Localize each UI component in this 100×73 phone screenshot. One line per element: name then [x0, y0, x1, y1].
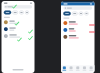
button[interactable]: Search	[4, 5, 32, 8]
button[interactable]: Filter	[84, 12, 88, 15]
button[interactable]: Search	[63, 6, 92, 10]
button[interactable]: Tab	[88, 66, 94, 71]
button[interactable]: Filter	[4, 11, 11, 14]
button[interactable]: Filter	[19, 11, 24, 14]
button[interactable]	[4, 19, 32, 26]
button[interactable]: Filter	[79, 12, 83, 15]
button[interactable]: Tab	[68, 66, 74, 71]
button[interactable]: Filter	[72, 12, 77, 15]
button[interactable]	[63, 20, 92, 26]
button[interactable]: Tab	[74, 66, 81, 71]
button[interactable]	[4, 33, 32, 39]
button[interactable]: Filter	[63, 12, 71, 15]
button[interactable]: Tab	[61, 66, 68, 71]
button[interactable]	[63, 26, 92, 33]
button[interactable]: Filter	[12, 11, 18, 14]
button[interactable]	[4, 26, 32, 33]
button[interactable]	[63, 33, 92, 40]
button[interactable]: Filter	[25, 11, 29, 14]
button[interactable]: Tab	[81, 66, 88, 71]
